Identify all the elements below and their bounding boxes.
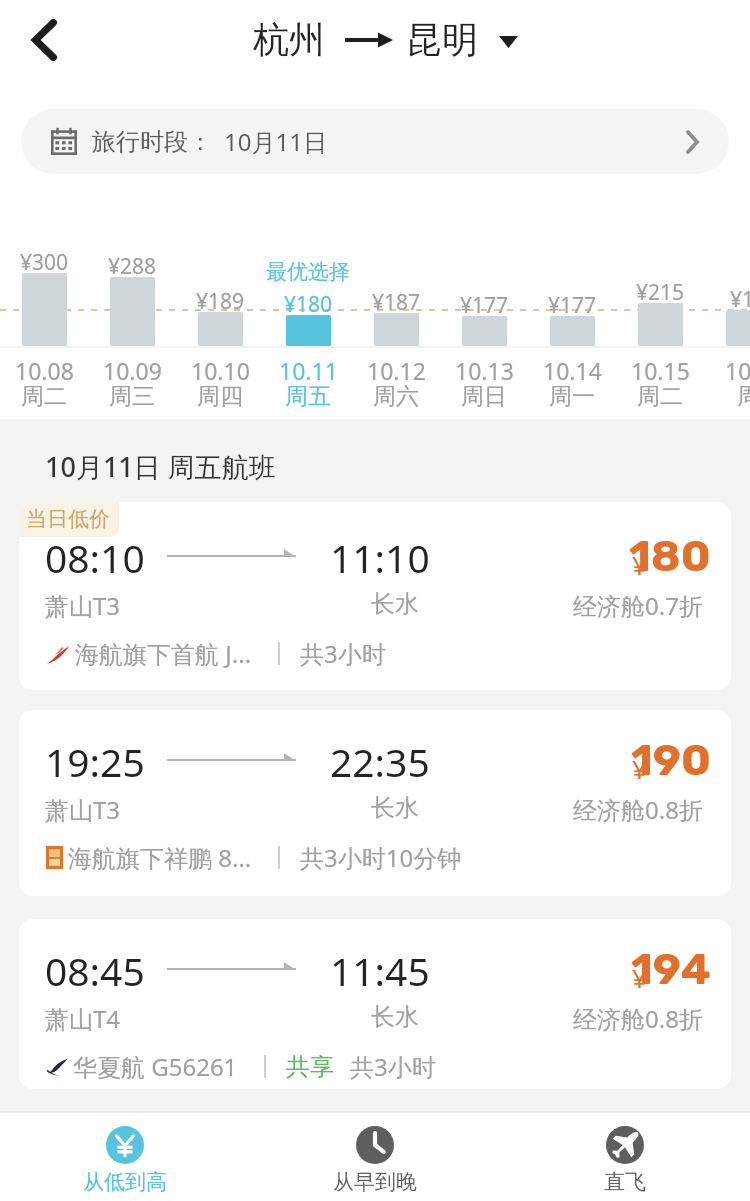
staticText: 共3小时 [300, 637, 386, 670]
staticText: 最优选择 [264, 259, 352, 285]
staticText: ¥189 [196, 287, 245, 316]
staticText: ¥177 [460, 291, 509, 320]
staticText: 10.15 [631, 355, 690, 386]
staticText: 10月11日 周五航班 [45, 448, 276, 485]
button[interactable]: ¥180 [264, 190, 352, 416]
staticText: ¥ [632, 960, 647, 995]
staticText: 10.12 [367, 355, 426, 386]
staticText: 周五 [285, 382, 331, 411]
staticText: 萧山T4 [45, 1002, 121, 1035]
staticText: 杭州 [253, 17, 325, 62]
staticText: ¥180 [284, 290, 333, 319]
button[interactable]: ¥177 [440, 190, 528, 416]
staticText: 10.1 [725, 355, 750, 386]
staticText: 海航旗下祥鹏 8... [68, 841, 252, 874]
staticText: ¥19 [730, 285, 750, 314]
button[interactable]: ¥215 [616, 190, 704, 416]
staticText: 从早到晚 [333, 1169, 417, 1195]
staticText: 10.09 [103, 355, 162, 386]
staticText: 10.13 [455, 355, 514, 386]
staticText: 10.14 [543, 355, 602, 386]
staticText: 从低到高 [83, 1169, 167, 1195]
staticText: ¥187 [372, 288, 421, 317]
staticText: 共享 [286, 1052, 334, 1082]
staticText: ¥215 [636, 278, 685, 307]
button[interactable]: 杭州 [240, 4, 530, 74]
staticText: 长水 [371, 1002, 419, 1032]
staticText: 10.08 [15, 355, 74, 386]
button[interactable]: ¥187 [352, 190, 440, 416]
staticText: 直飞 [604, 1169, 646, 1195]
button[interactable]: Back [12, 8, 76, 72]
staticText: 周 [737, 382, 750, 411]
staticText: 经济舱0.8折 [573, 1002, 703, 1035]
staticText: 长水 [371, 793, 419, 823]
button[interactable]: ¥288 [88, 190, 176, 416]
button[interactable]: 直飞 [500, 1112, 750, 1201]
staticText: 190 [631, 734, 711, 786]
staticText: 11:10 [330, 531, 430, 584]
staticText: 08:45 [45, 944, 145, 997]
staticText: 22:35 [330, 735, 430, 788]
staticText: 经济舱0.7折 [573, 589, 703, 622]
staticText: 周日 [461, 382, 507, 411]
staticText: 周一 [549, 382, 595, 411]
staticText: 海航旗下首航 J... [75, 637, 252, 670]
staticText: 11:45 [330, 944, 430, 997]
button[interactable]: ¥300 [0, 190, 88, 416]
button[interactable]: 当日低价 [19, 502, 731, 690]
staticText: ¥300 [20, 248, 69, 277]
staticText: 萧山T3 [45, 793, 121, 826]
staticText: 经济舱0.8折 [573, 793, 703, 826]
staticText: 周四 [197, 382, 243, 411]
staticText: 长水 [371, 589, 419, 619]
button[interactable]: 19:25 [19, 710, 731, 896]
button[interactable]: 从低到高 [0, 1112, 250, 1201]
staticText: 萧山T3 [45, 589, 121, 622]
staticText: ¥177 [548, 291, 597, 320]
staticText: 旅行时段： [92, 127, 212, 157]
staticText: 10.10 [191, 355, 250, 386]
button[interactable]: 从早到晚 [250, 1112, 500, 1201]
staticText: ¥ [632, 547, 647, 582]
staticText: 19:25 [45, 735, 145, 788]
staticText: 周二 [21, 382, 67, 411]
staticText: 周六 [373, 382, 419, 411]
button[interactable]: 08:45 [19, 919, 731, 1089]
staticText: 08:10 [45, 531, 145, 584]
staticText: ¥288 [108, 252, 157, 281]
staticText: 10.11 [279, 355, 338, 386]
staticText: 10月11日 [224, 125, 327, 158]
button[interactable]: 旅行时段： [21, 109, 729, 174]
staticText: 周三 [109, 382, 155, 411]
staticText: 周二 [637, 382, 683, 411]
staticText: 共3小时 [350, 1050, 436, 1083]
staticText: 当日低价 [26, 506, 110, 532]
button[interactable]: ¥189 [176, 190, 264, 416]
staticText: 昆明 [406, 17, 478, 62]
staticText: 194 [631, 943, 711, 995]
staticText: ¥ [632, 751, 647, 786]
staticText: 共3小时10分钟 [300, 841, 462, 874]
staticText: 180 [629, 530, 711, 582]
staticText: 华夏航 G56261 [73, 1050, 238, 1083]
button[interactable]: ¥19 [704, 190, 750, 416]
button[interactable]: ¥177 [528, 190, 616, 416]
